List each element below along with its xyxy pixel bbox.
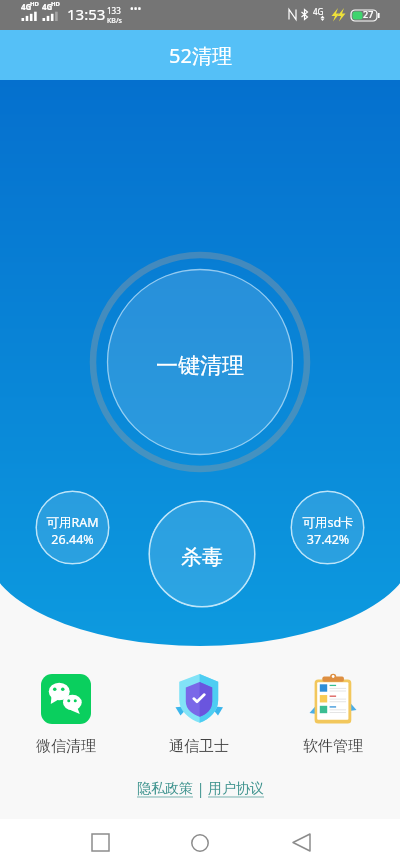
staticText: 27 (363, 8, 374, 20)
staticText: ••• (130, 2, 142, 16)
button[interactable]: 可用sd卡 37.42% (290, 490, 365, 565)
button[interactable]: Recents (76, 819, 124, 866)
staticText: 可用sd卡 37.42% (302, 514, 354, 547)
staticText: 软件管理 (303, 737, 363, 756)
button[interactable]: 用户协议 (208, 780, 264, 798)
staticText: 杀毒 (181, 544, 223, 570)
button[interactable]: 通信卫士 (154, 670, 244, 756)
button[interactable]: 一键清理 (88, 250, 312, 474)
staticText: 通信卫士 (169, 737, 229, 756)
button[interactable]: Back (277, 819, 325, 866)
button[interactable]: 微信清理 (21, 670, 111, 756)
button[interactable]: 软件管理 (288, 670, 378, 756)
staticText: KB/s (107, 16, 122, 26)
staticText: | (193, 779, 208, 798)
staticText: 可用RAM 26.44% (46, 514, 99, 547)
staticText: 52清理 (169, 42, 232, 69)
staticText: HD (30, 0, 39, 8)
staticText: 微信清理 (36, 737, 96, 756)
button[interactable]: 杀毒 (148, 500, 256, 608)
staticText: 4G (21, 1, 32, 12)
button[interactable]: 可用RAM 26.44% (35, 490, 110, 565)
staticText: 4G (313, 6, 324, 17)
staticText: 一键清理 (156, 352, 244, 380)
staticText: HD (51, 0, 60, 8)
staticText: 13:53 (67, 4, 106, 24)
button[interactable]: 隐私政策 (137, 780, 193, 798)
staticText: 4G (42, 1, 53, 12)
button[interactable]: Home (176, 819, 224, 866)
staticText: 133 (107, 5, 121, 16)
